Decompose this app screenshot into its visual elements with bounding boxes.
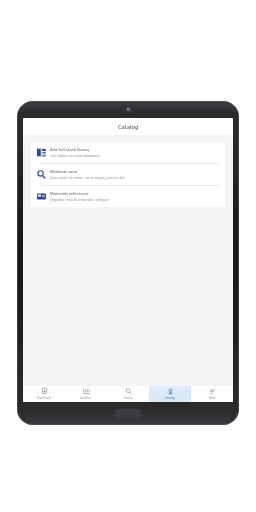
- staticText: Catalog: [118, 123, 139, 131]
- button[interactable]: Routines: [65, 386, 107, 402]
- staticText: More: [209, 396, 216, 400]
- staticText: Organise records materials configure: [50, 197, 110, 202]
- staticText: Downloads: [37, 396, 52, 400]
- staticText: Add full-stack library: [50, 147, 90, 152]
- button[interactable]: Add full-stack library: [31, 142, 225, 163]
- staticText: Methods suite: [50, 169, 78, 174]
- button[interactable]: Materials referencer: [31, 186, 225, 207]
- staticText: Use fabrics to create databases: [50, 153, 100, 158]
- staticText: Materials referencer: [50, 191, 89, 196]
- button[interactable]: Catalog: [149, 386, 191, 402]
- staticText: Quer catch for items, use to target, pro…: [50, 175, 125, 180]
- button[interactable]: Search: [107, 386, 149, 402]
- staticText: Search: [124, 396, 133, 400]
- staticText: Routines: [80, 396, 92, 400]
- button[interactable]: More: [191, 386, 233, 402]
- button[interactable]: Downloads: [23, 386, 65, 402]
- staticText: Catalog: [165, 396, 175, 400]
- button[interactable]: Methods suite: [31, 164, 225, 185]
